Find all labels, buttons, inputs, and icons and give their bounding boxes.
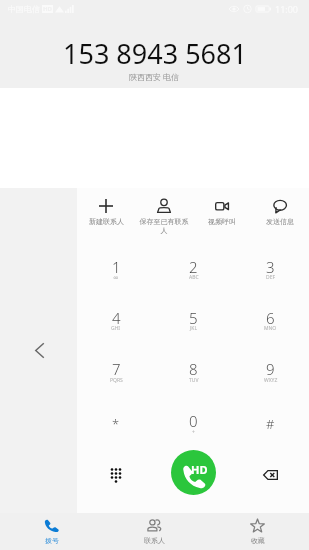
staticText: 发送信息 bbox=[266, 217, 294, 226]
button[interactable]: 新建联系人 bbox=[77, 199, 135, 226]
staticText: 5 bbox=[189, 308, 198, 328]
staticText: HD bbox=[43, 5, 52, 13]
button[interactable]: Hide keypad bbox=[77, 444, 155, 500]
button[interactable]: Back bbox=[24, 335, 54, 365]
staticText: MNO bbox=[264, 325, 277, 332]
staticText: 2 bbox=[189, 257, 198, 277]
button[interactable]: 1 bbox=[77, 241, 155, 292]
button[interactable]: 3 bbox=[232, 241, 309, 292]
button[interactable]: 发送信息 bbox=[251, 199, 309, 226]
staticText: + bbox=[192, 429, 195, 436]
staticText: TUV bbox=[189, 377, 199, 384]
staticText: 4 bbox=[112, 308, 121, 328]
button[interactable]: 收藏 bbox=[206, 513, 309, 550]
staticText: PQRS bbox=[110, 377, 123, 384]
staticText: 8 bbox=[189, 359, 198, 379]
staticText: 0 bbox=[189, 411, 198, 431]
button[interactable]: 7 bbox=[77, 343, 155, 395]
staticText: 9 bbox=[266, 359, 275, 379]
staticText: HD bbox=[191, 462, 208, 477]
staticText: DEF bbox=[266, 274, 276, 281]
button[interactable]: 6 bbox=[232, 292, 309, 343]
button[interactable]: Backspace bbox=[232, 444, 309, 500]
staticText: JKL bbox=[190, 325, 198, 332]
staticText: 3 bbox=[266, 257, 275, 277]
staticText: ∞ bbox=[113, 274, 119, 282]
button[interactable]: 2 bbox=[155, 241, 232, 292]
staticText: 153 8943 5681 bbox=[63, 35, 247, 72]
staticText: 7 bbox=[112, 359, 121, 379]
staticText: 11:00 bbox=[275, 3, 299, 15]
staticText: # bbox=[266, 415, 275, 433]
staticText: 联系人 bbox=[144, 536, 165, 545]
staticText: 保存至已有联系人 bbox=[138, 217, 190, 236]
button[interactable]: 9 bbox=[232, 343, 309, 395]
button[interactable]: # bbox=[232, 395, 309, 447]
staticText: 收藏 bbox=[251, 536, 265, 545]
button[interactable]: 视频呼叫 bbox=[193, 199, 251, 226]
staticText: ABC bbox=[189, 274, 199, 281]
button[interactable]: 保存至已有联系人 bbox=[135, 199, 193, 236]
button[interactable]: Call bbox=[171, 450, 216, 495]
staticText: 拨号 bbox=[45, 536, 59, 545]
staticText: 视频呼叫 bbox=[208, 217, 236, 226]
staticText: 6 bbox=[266, 308, 275, 328]
staticText: 陕西西安 电信 bbox=[129, 71, 180, 82]
button[interactable]: 0 bbox=[155, 395, 232, 447]
staticText: GHI bbox=[111, 325, 121, 332]
button[interactable]: 联系人 bbox=[103, 513, 206, 550]
button[interactable]: 5 bbox=[155, 292, 232, 343]
staticText: WXYZ bbox=[264, 377, 278, 384]
button[interactable]: 拨号 bbox=[0, 513, 103, 550]
staticText: 1 bbox=[112, 257, 121, 277]
staticText: * bbox=[112, 415, 120, 433]
button[interactable]: * bbox=[77, 395, 155, 447]
button[interactable]: 4 bbox=[77, 292, 155, 343]
staticText: 新建联系人 bbox=[89, 217, 124, 226]
staticText: 中国电信 bbox=[8, 4, 40, 14]
button[interactable]: 8 bbox=[155, 343, 232, 395]
